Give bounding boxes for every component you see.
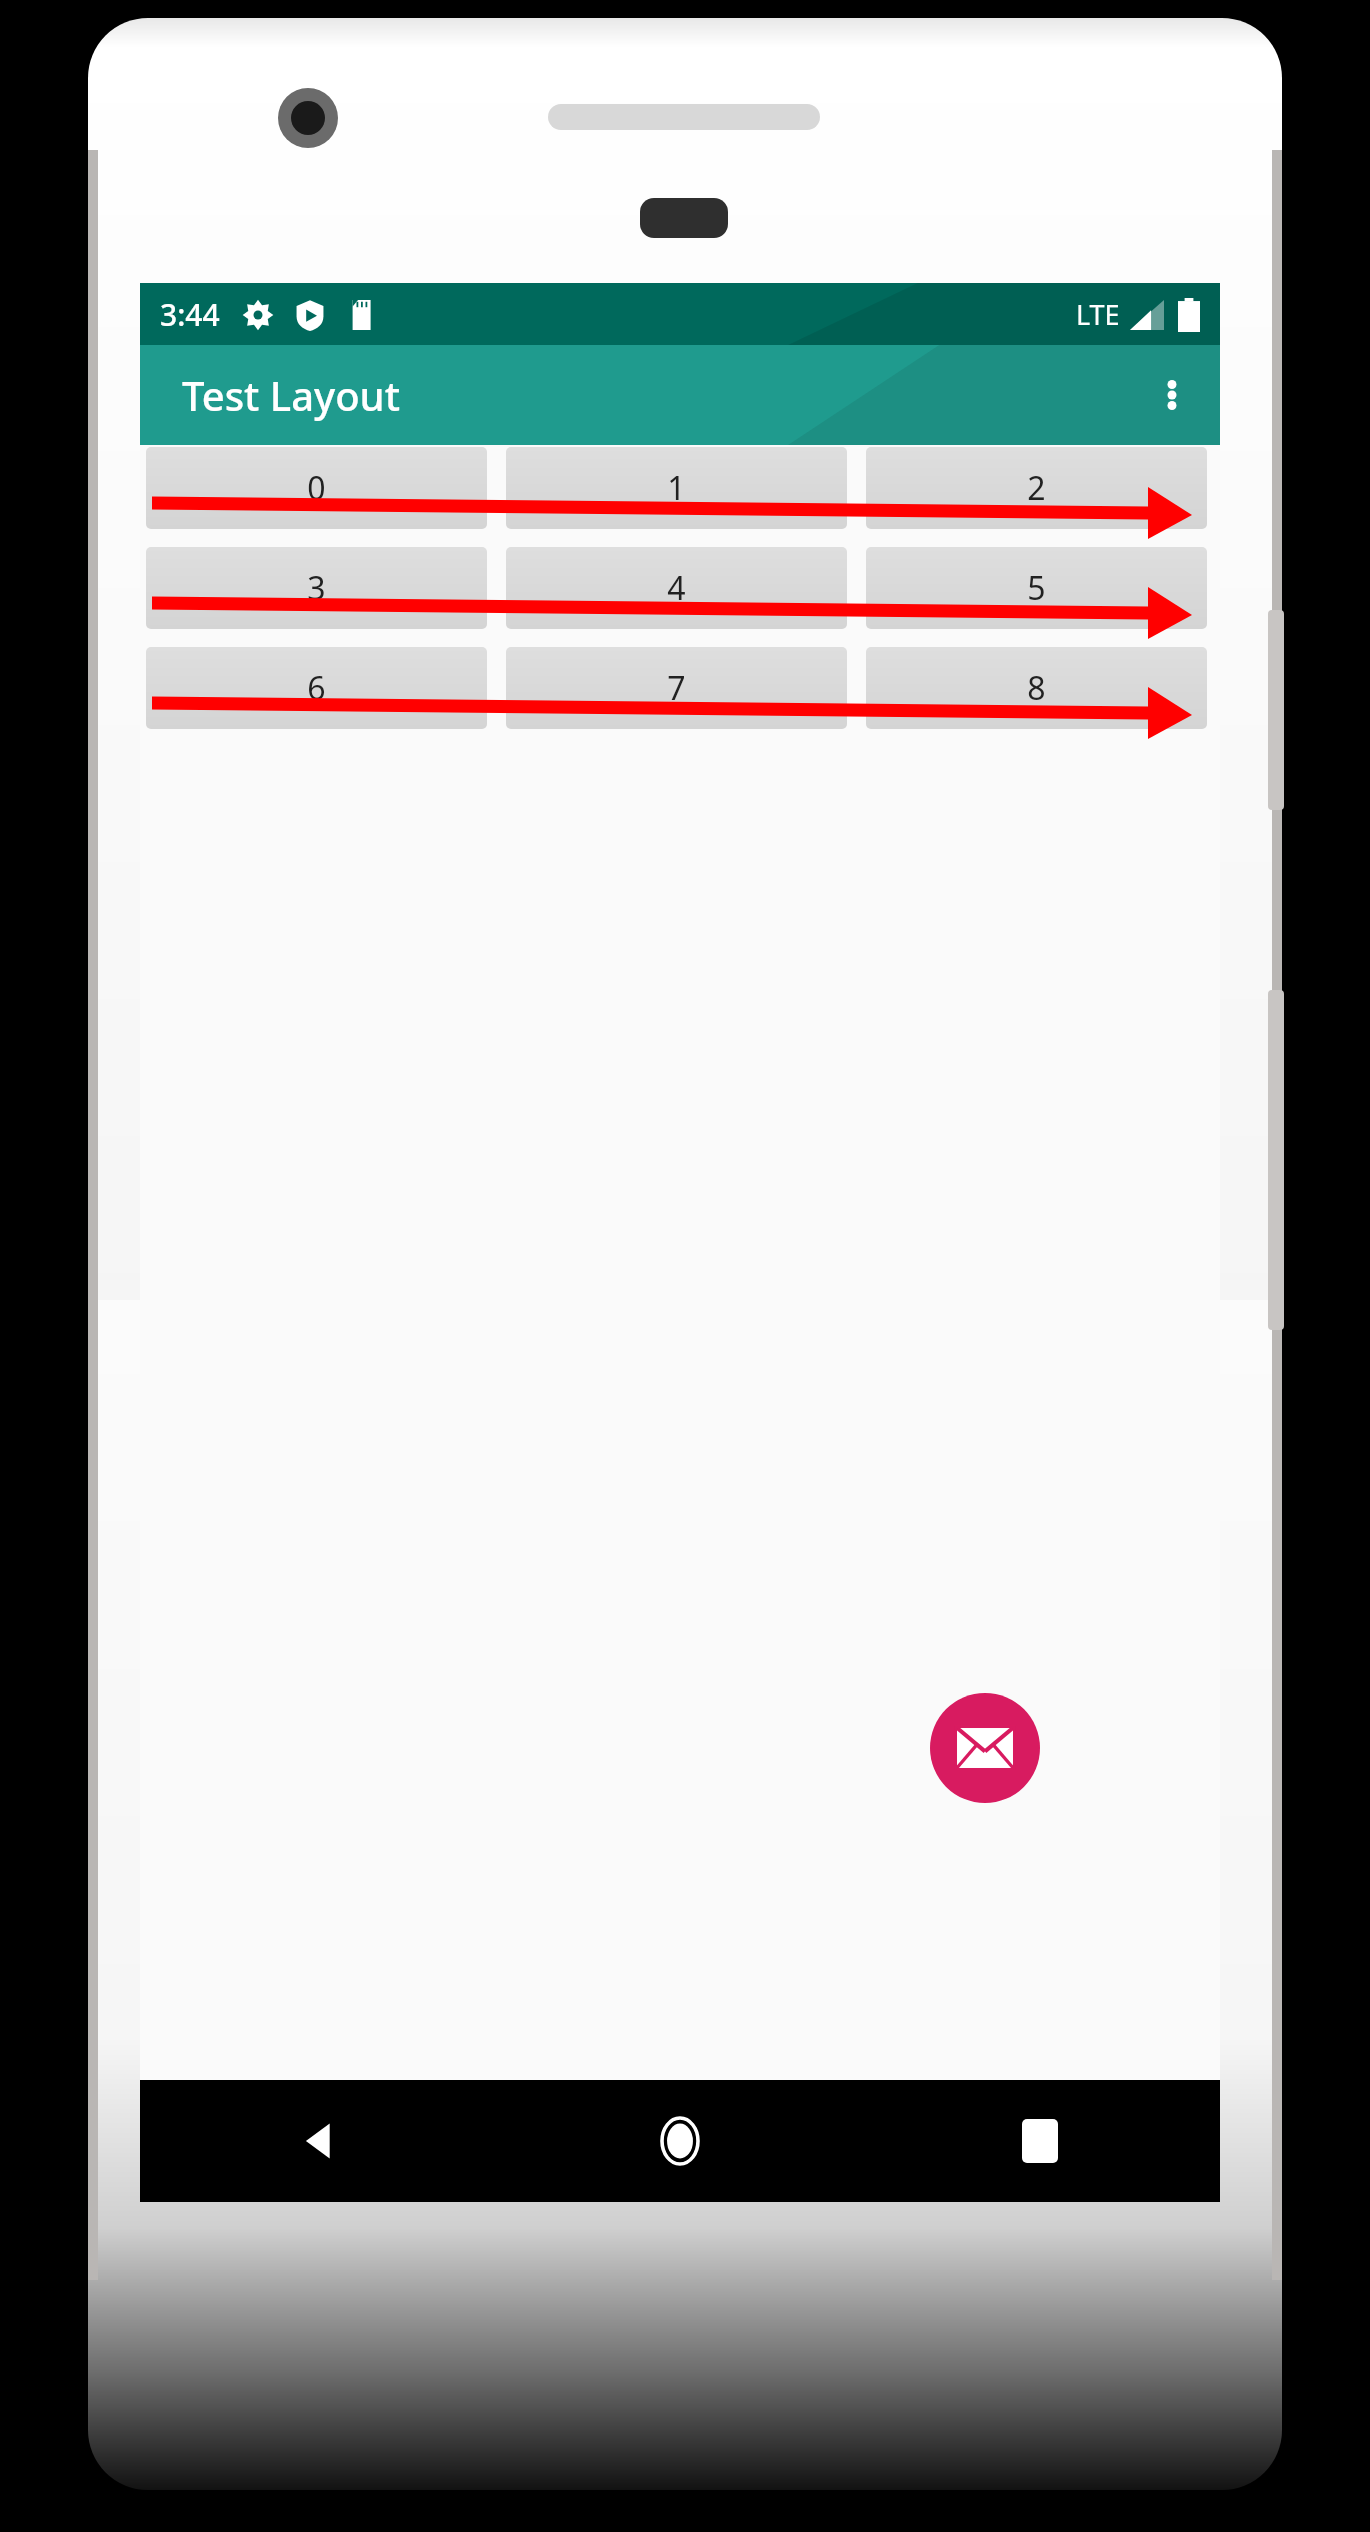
staticText: 7 [667,666,686,710]
button[interactable]: 2 [866,447,1207,529]
staticText: Test Layout [182,368,400,422]
staticText: 6 [307,666,326,710]
button[interactable]: Back [140,2080,500,2202]
staticText: 3 [307,566,326,610]
button[interactable]: 8 [866,647,1207,729]
staticText: 0 [307,466,326,510]
button[interactable]: 7 [506,647,847,729]
button[interactable]: Recent apps [860,2080,1220,2202]
button[interactable]: 4 [506,547,847,629]
staticText: 3:44 [160,294,220,335]
button[interactable]: 6 [146,647,487,729]
button[interactable]: Compose email [930,1693,1040,1803]
button[interactable]: 1 [506,447,847,529]
staticText: 4 [667,566,686,610]
button[interactable]: Home [500,2080,860,2202]
staticText: 8 [1027,666,1046,710]
staticText: 2 [1027,466,1046,510]
staticText: LTE [1076,296,1120,333]
staticText: 1 [667,466,686,510]
button[interactable]: More options [1124,347,1220,443]
button[interactable]: 0 [146,447,487,529]
button[interactable]: 5 [866,547,1207,629]
button[interactable]: 3 [146,547,487,629]
staticText: 5 [1027,566,1046,610]
